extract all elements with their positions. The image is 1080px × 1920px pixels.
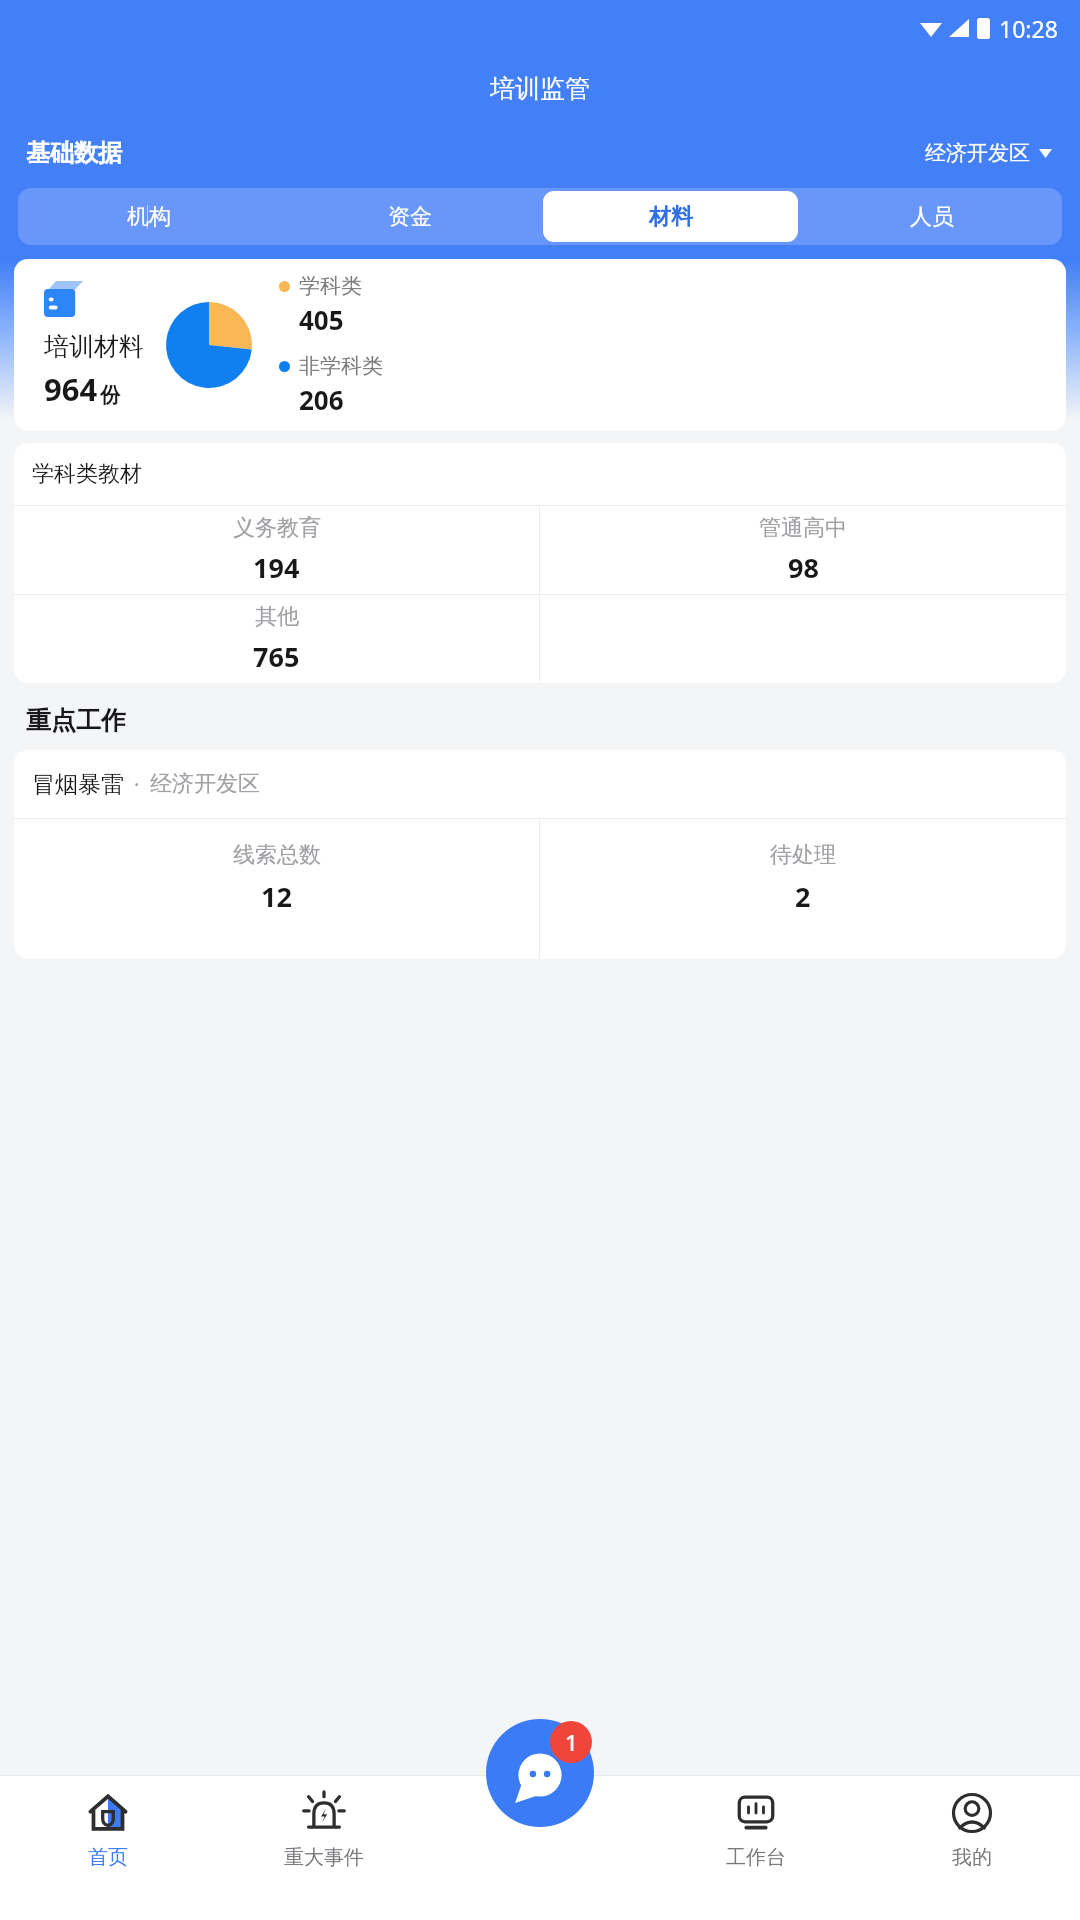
staticText: 10:28: [999, 13, 1058, 44]
staticText: 1: [565, 1727, 578, 1757]
button[interactable]: 经济开发区: [921, 136, 1056, 170]
staticText: 人员: [910, 203, 954, 231]
staticText: 12: [261, 878, 292, 915]
staticText: 重点工作: [26, 705, 126, 736]
button[interactable]: 培训材料: [14, 259, 1066, 431]
staticText: 206: [299, 382, 344, 417]
button[interactable]: 首页: [0, 1775, 216, 1920]
button[interactable]: 资金: [282, 191, 537, 242]
button[interactable]: 我的: [864, 1775, 1080, 1920]
staticText: 基础数据: [26, 138, 122, 168]
staticText: ·: [134, 771, 140, 798]
staticText: 经济开发区: [925, 140, 1030, 166]
button[interactable]: 工作台: [648, 1775, 864, 1920]
staticText: 405: [299, 302, 344, 337]
button[interactable]: 人员: [804, 191, 1059, 242]
button[interactable]: 管通高中: [540, 506, 1066, 594]
staticText: 培训监管: [490, 73, 590, 104]
staticText: 资金: [388, 203, 432, 231]
staticText: 重大事件: [284, 1845, 364, 1870]
staticText: 我的: [952, 1845, 992, 1870]
button[interactable]: 其他: [14, 595, 539, 683]
button[interactable]: 材料: [543, 191, 798, 242]
staticText: 学科类: [299, 273, 362, 299]
staticText: 98: [788, 549, 819, 586]
staticText: 待处理: [770, 841, 836, 869]
button[interactable]: 消息: [486, 1719, 594, 1827]
staticText: 培训材料: [44, 331, 144, 362]
button[interactable]: 义务教育: [14, 506, 539, 594]
staticText: 义务教育: [233, 514, 321, 542]
staticText: 份: [100, 383, 120, 408]
button[interactable]: 待处理: [540, 841, 1066, 959]
staticText: 194: [253, 549, 300, 586]
staticText: 冒烟暴雷: [32, 770, 124, 799]
staticText: 非学科类: [299, 353, 383, 379]
button[interactable]: 线索总数: [14, 841, 539, 959]
staticText: 机构: [127, 203, 171, 231]
staticText: 线索总数: [233, 841, 321, 869]
staticText: 964: [44, 368, 98, 410]
staticText: 管通高中: [759, 514, 847, 542]
staticText: 首页: [88, 1845, 128, 1870]
staticText: 其他: [255, 603, 299, 631]
staticText: 工作台: [726, 1845, 786, 1870]
staticText: 765: [253, 638, 300, 675]
staticText: 2: [795, 878, 811, 915]
button[interactable]: 机构: [21, 191, 276, 242]
staticText: 学科类教材: [32, 460, 142, 488]
staticText: 经济开发区: [150, 770, 260, 798]
staticText: 材料: [649, 203, 693, 231]
button[interactable]: 重大事件: [216, 1775, 432, 1920]
